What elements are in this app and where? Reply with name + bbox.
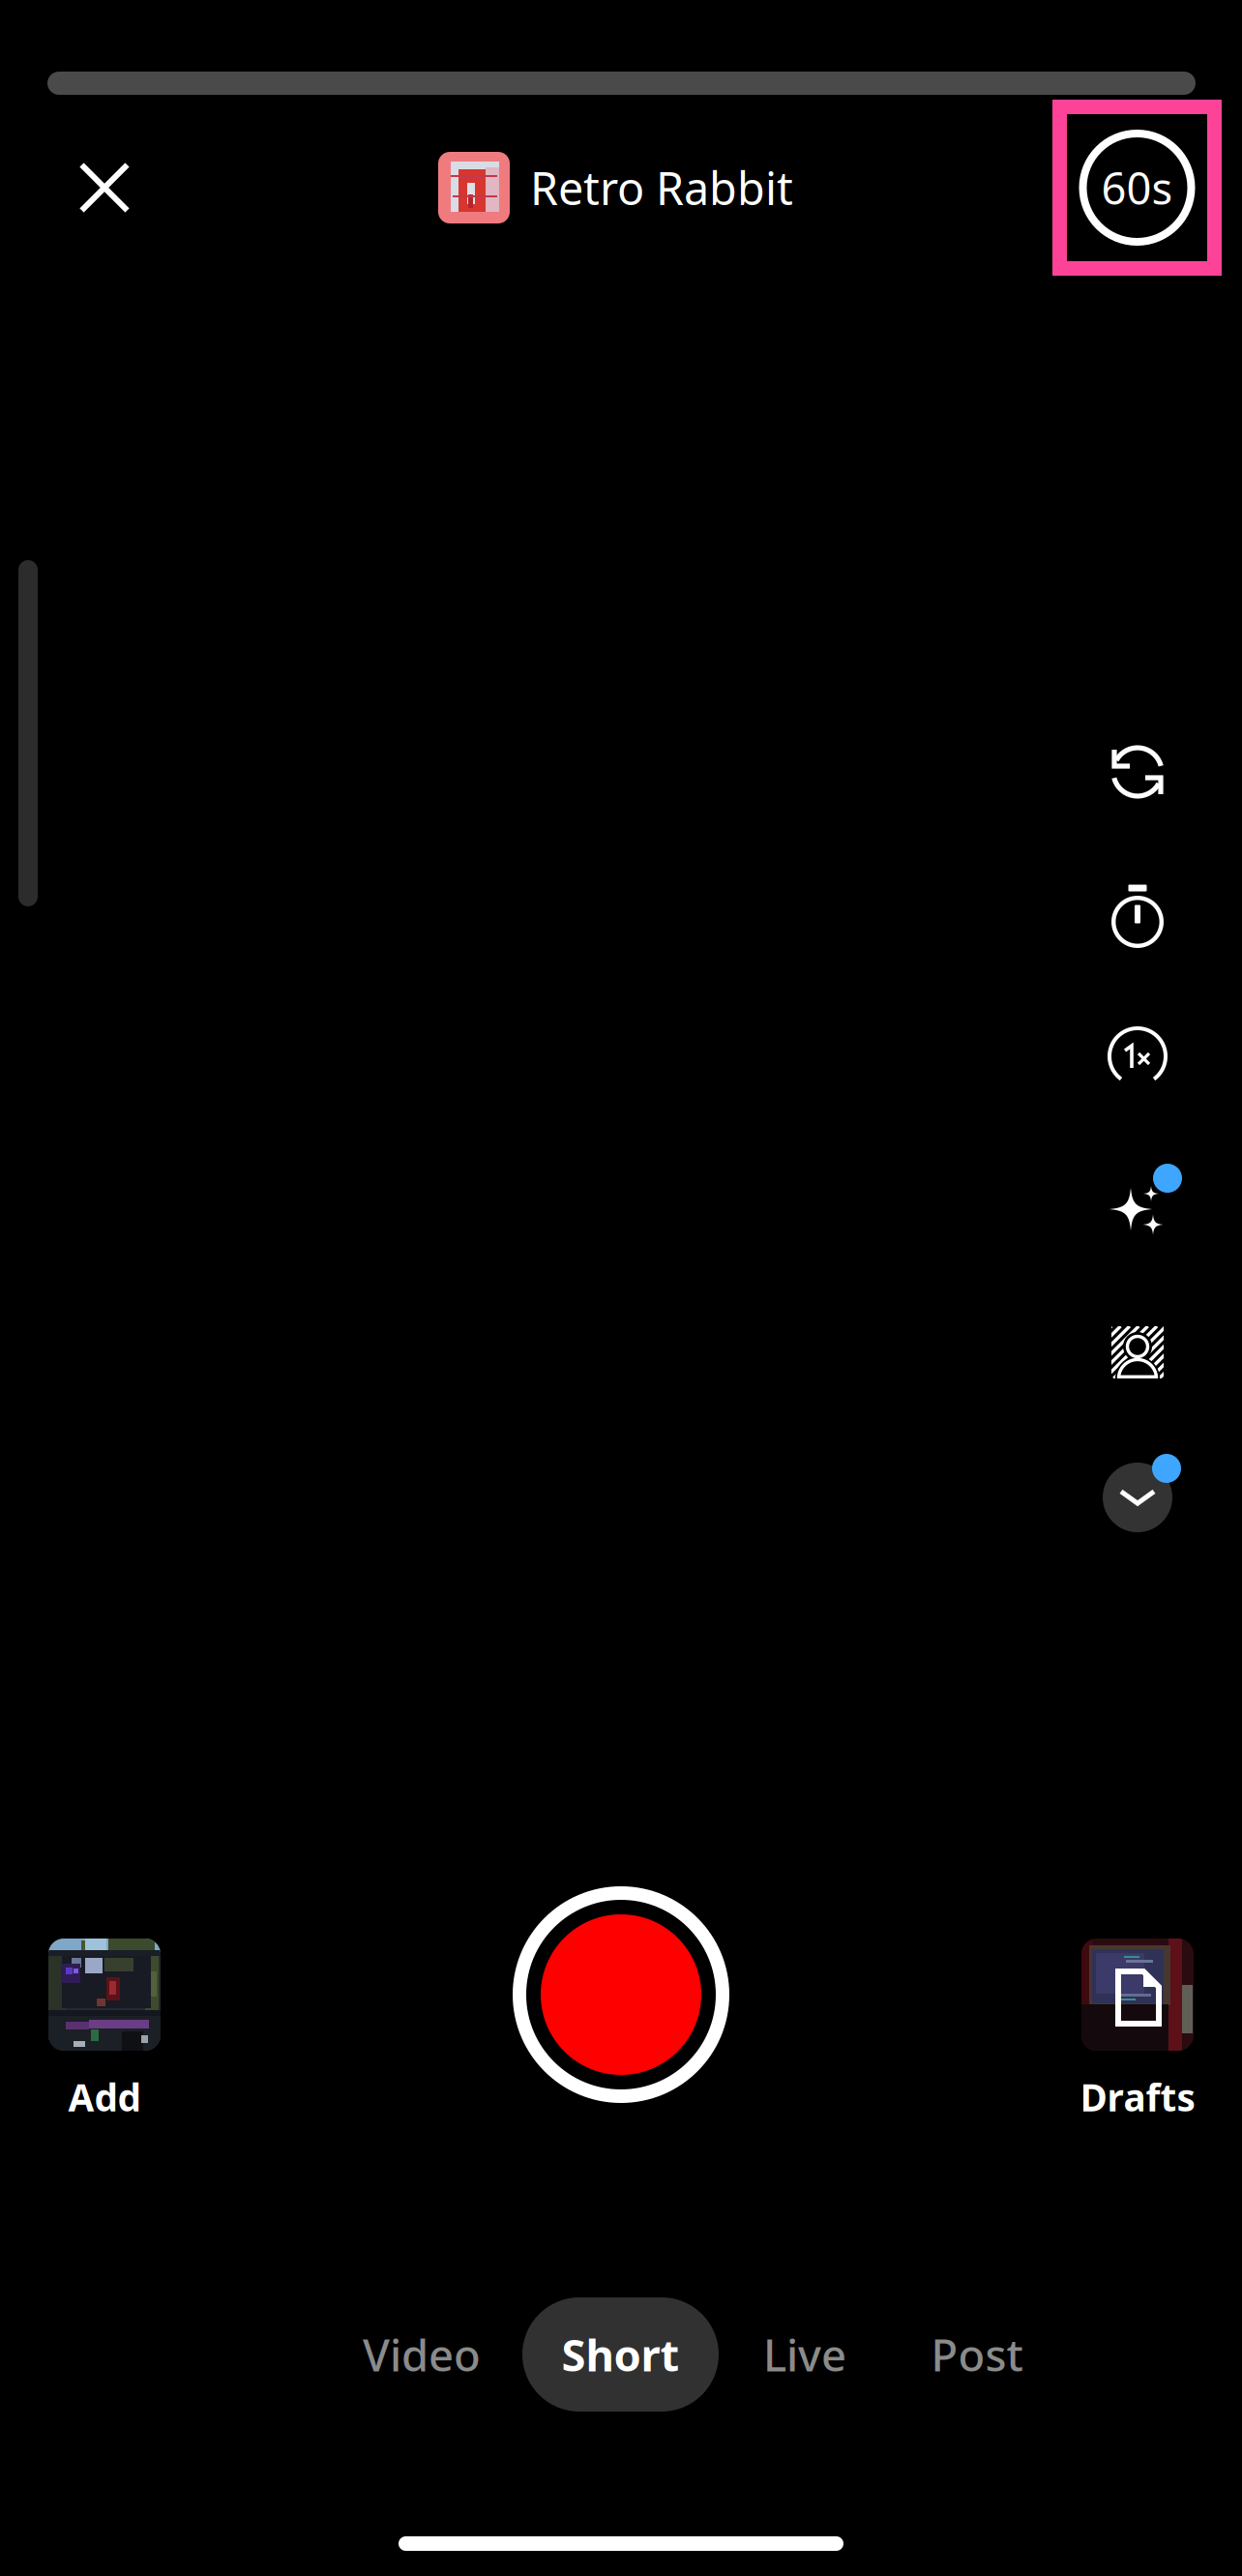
- button[interactable]: Add: [17, 1939, 192, 2122]
- button[interactable]: Drafts: [1050, 1939, 1225, 2122]
- staticText: Video: [363, 2325, 481, 2384]
- button[interactable]: Short: [522, 2297, 719, 2412]
- staticText: Drafts: [1080, 2072, 1195, 2122]
- button[interactable]: Video: [340, 2297, 504, 2412]
- button[interactable]: Post: [904, 2297, 1050, 2412]
- button[interactable]: Flip camera: [1084, 719, 1191, 825]
- button[interactable]: Timer: [1084, 862, 1191, 968]
- button[interactable]: Live: [737, 2297, 872, 2412]
- button[interactable]: Playback speed: [1084, 1003, 1191, 1110]
- staticText: Live: [763, 2325, 846, 2384]
- staticText: Short: [562, 2325, 680, 2384]
- button[interactable]: Record: [505, 1879, 737, 2111]
- button[interactable]: Retro Rabbit: [438, 139, 793, 236]
- staticText: Add: [68, 2072, 141, 2122]
- button[interactable]: Effects: [1084, 1144, 1191, 1251]
- button[interactable]: Green screen: [1084, 1299, 1191, 1406]
- staticText: Post: [931, 2325, 1023, 2384]
- staticText: Retro Rabbit: [530, 158, 793, 218]
- button[interactable]: Maximum length 60 seconds: [1052, 100, 1222, 276]
- button[interactable]: Close: [52, 135, 157, 240]
- button[interactable]: More options: [1084, 1444, 1191, 1551]
- staticText: 60s: [1101, 159, 1173, 217]
